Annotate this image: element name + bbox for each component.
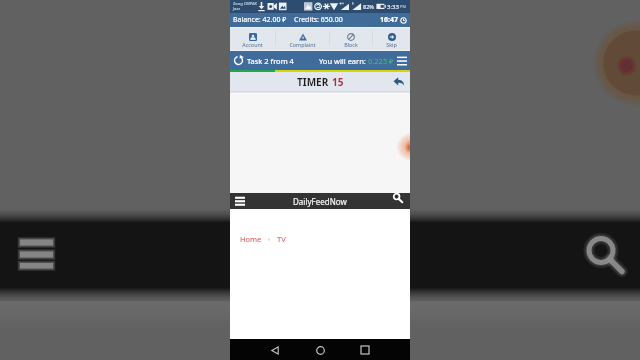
staticText: Skip bbox=[386, 41, 397, 48]
button[interactable]: Refresh task bbox=[233, 55, 244, 66]
button[interactable]: Block bbox=[330, 28, 372, 50]
staticText: Account bbox=[242, 41, 263, 48]
button[interactable]: Home bbox=[240, 234, 262, 244]
staticText: 15 bbox=[332, 75, 344, 89]
staticText: Zong CMPAK bbox=[233, 1, 258, 6]
button[interactable]: Complaint bbox=[276, 28, 329, 50]
staticText: Task 2 from 4 bbox=[247, 56, 294, 66]
staticText: Block bbox=[344, 41, 358, 48]
button[interactable]: Back bbox=[393, 76, 404, 87]
staticText: 16:47 bbox=[380, 15, 398, 25]
staticText: 3:33 bbox=[387, 3, 399, 11]
button[interactable]: Help bbox=[394, 136, 410, 158]
button[interactable]: Home bbox=[310, 340, 330, 360]
button[interactable]: TV bbox=[277, 234, 286, 244]
staticText: › bbox=[268, 235, 270, 243]
button[interactable]: Skip bbox=[373, 28, 410, 50]
staticText: You will earn: bbox=[319, 56, 366, 66]
button[interactable]: Recent apps bbox=[355, 340, 375, 360]
button[interactable]: Open navigation drawer bbox=[232, 193, 248, 209]
button[interactable]: Account bbox=[230, 28, 275, 50]
staticText: 0.225 ₽ bbox=[368, 56, 394, 66]
button[interactable]: Menu bbox=[397, 56, 407, 65]
staticText: Credits: 650.00 bbox=[294, 15, 343, 25]
staticText: TIMER bbox=[297, 75, 329, 89]
staticText: Complaint bbox=[289, 41, 316, 48]
staticText: Jazz bbox=[233, 6, 241, 11]
button[interactable]: Search bbox=[391, 193, 407, 209]
staticText: 82% bbox=[363, 3, 374, 10]
staticText: PM bbox=[400, 4, 407, 9]
staticText: Balance: 42.00 ₽ bbox=[233, 15, 287, 25]
staticText: DailyFeedNow bbox=[293, 196, 347, 207]
button[interactable]: Back bbox=[265, 340, 285, 360]
